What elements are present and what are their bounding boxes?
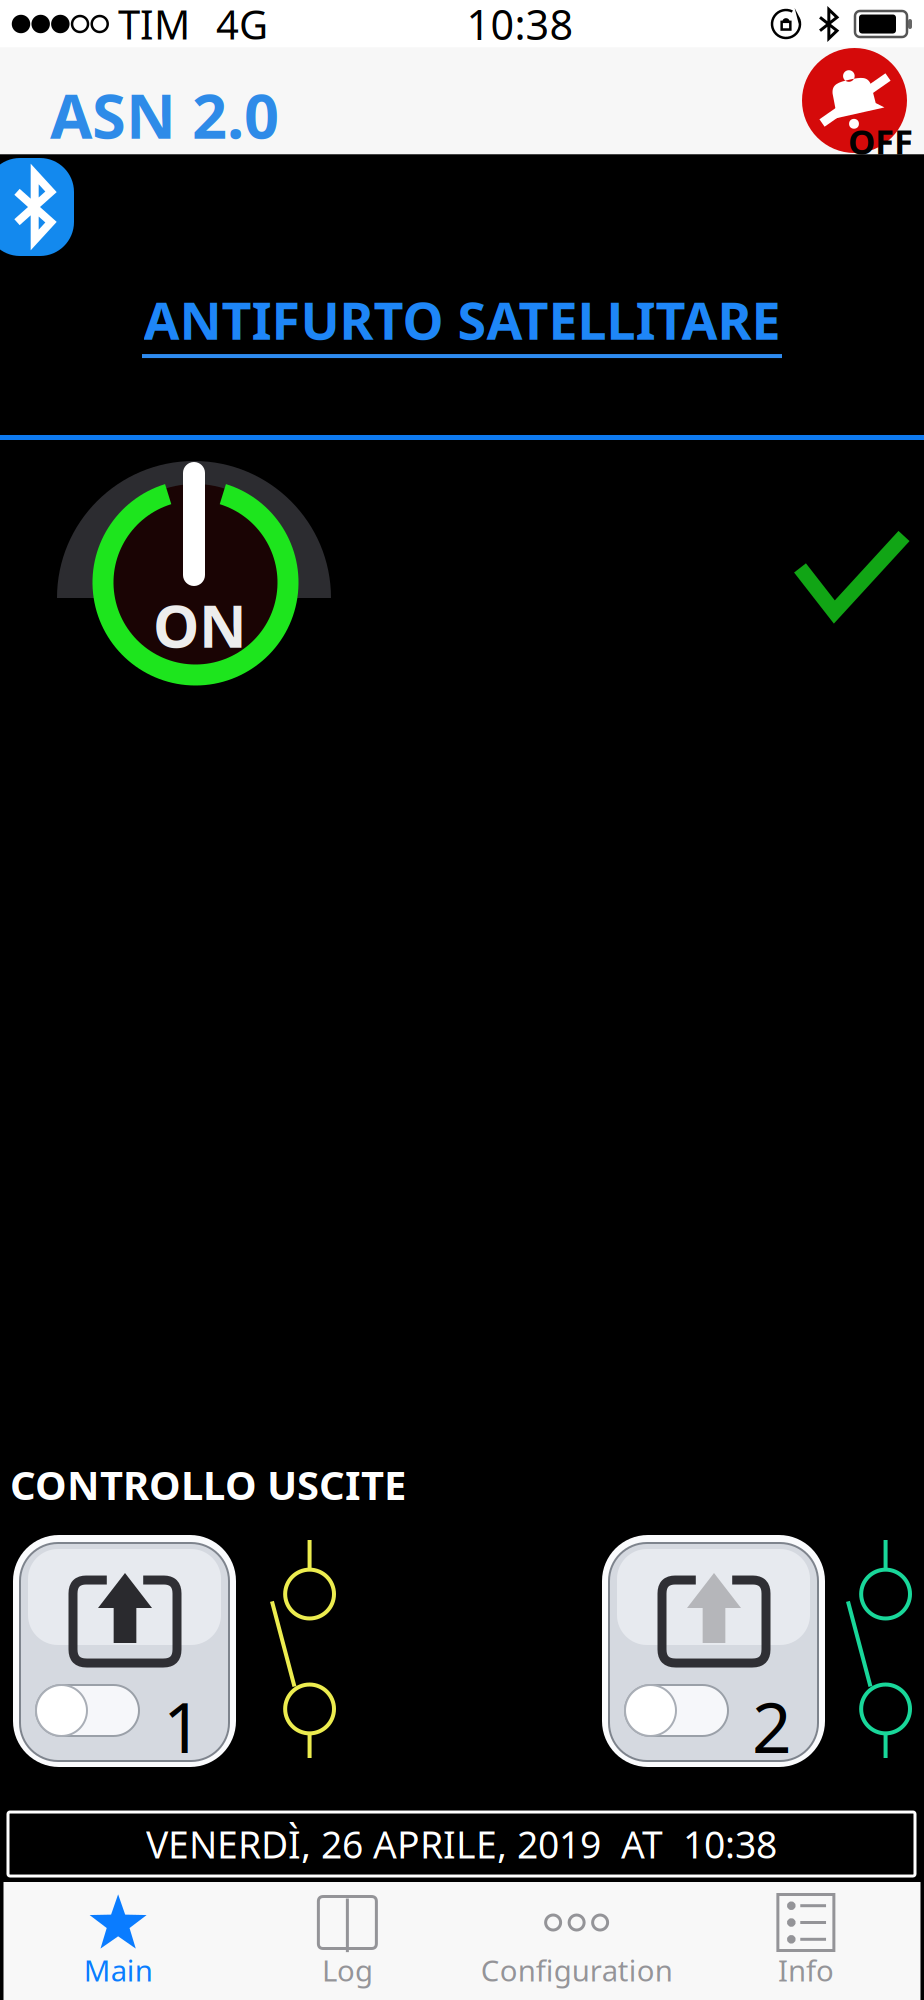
button[interactable]: Log	[233, 1886, 462, 1995]
staticText: Configuration	[481, 1950, 673, 1989]
staticText: OFF	[848, 118, 913, 164]
staticText: Info	[778, 1950, 834, 1989]
staticText: 4G	[216, 0, 268, 50]
button[interactable]: Main	[3, 1886, 233, 1995]
staticText: ASN 2.0	[50, 74, 279, 156]
button[interactable]: Configuration	[462, 1886, 691, 1995]
staticText: ANTIFURTO SATELLITARE	[143, 285, 780, 354]
staticText: VENERDÌ, 26 APRILE, 2019 AT 10:38	[146, 1819, 777, 1869]
staticText: CONTROLLO USCITE	[10, 1458, 406, 1511]
staticText: Log	[322, 1950, 373, 1989]
button[interactable]: Info	[691, 1886, 920, 1995]
button[interactable]: Output 2	[602, 1535, 825, 1767]
staticText: 1	[163, 1680, 203, 1772]
staticText: 10:38	[466, 0, 573, 51]
button[interactable]: Output 1	[13, 1535, 236, 1767]
staticText: Main	[84, 1950, 153, 1989]
staticText: ON	[153, 586, 247, 664]
button[interactable]: Alarm notifications off	[802, 48, 917, 160]
staticText: TIM	[118, 0, 190, 50]
staticText: 2	[752, 1680, 792, 1772]
